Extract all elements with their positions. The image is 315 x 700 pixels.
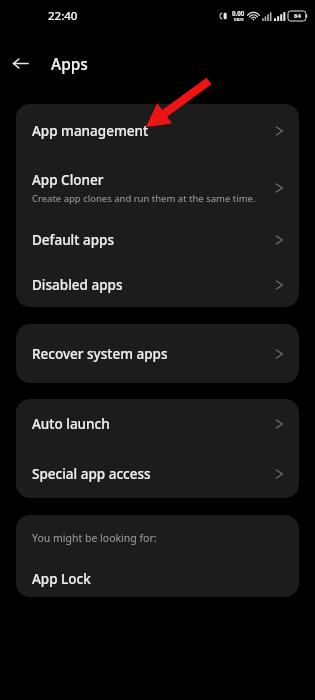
button[interactable]: App management bbox=[16, 104, 299, 158]
staticText: App management bbox=[32, 122, 149, 140]
staticText: Recover system apps bbox=[32, 345, 168, 363]
staticText: App Lock bbox=[32, 570, 91, 588]
staticText: Default apps bbox=[32, 231, 114, 249]
staticText: You might be looking for: bbox=[32, 531, 157, 545]
staticText: 0.00 bbox=[232, 9, 245, 17]
button[interactable]: App Lock bbox=[16, 561, 299, 597]
button[interactable]: Auto launch bbox=[16, 399, 299, 449]
staticText: Apps bbox=[51, 53, 88, 74]
staticText: Auto launch bbox=[32, 415, 110, 433]
staticText: App Cloner bbox=[32, 171, 104, 189]
button[interactable]: Default apps bbox=[16, 217, 299, 262]
staticText: KB/S bbox=[234, 17, 244, 23]
staticText: Special app access bbox=[32, 465, 151, 483]
button[interactable]: Back bbox=[0, 44, 40, 82]
staticText: Disabled apps bbox=[32, 276, 123, 294]
button[interactable]: Disabled apps bbox=[16, 262, 299, 307]
staticText: Create app clones and run them at the sa… bbox=[32, 192, 256, 205]
staticText: 64 bbox=[294, 12, 301, 20]
button[interactable]: Recover system apps bbox=[16, 324, 299, 383]
staticText: 22:40 bbox=[48, 8, 78, 24]
button[interactable]: App Cloner bbox=[16, 158, 299, 217]
button[interactable]: Special app access bbox=[16, 449, 299, 498]
